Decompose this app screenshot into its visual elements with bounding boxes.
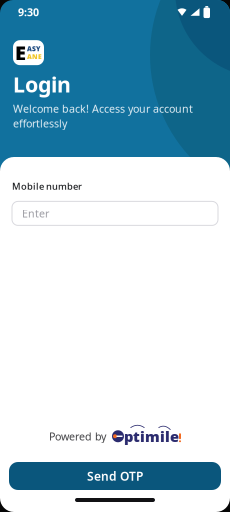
- button[interactable]: Mobile number: [12, 201, 218, 225]
- staticText: ptimile: [124, 426, 179, 446]
- staticText: Send OTP: [87, 468, 143, 484]
- staticText: Enter: [22, 206, 49, 220]
- staticText: Mobile number: [12, 180, 82, 192]
- button[interactable]: Send OTP: [9, 462, 221, 490]
- staticText: ASY: [27, 44, 40, 53]
- staticText: Welcome back! Access your account effort…: [13, 101, 193, 130]
- staticText: Login: [13, 70, 71, 98]
- staticText: Powered by: [49, 429, 106, 443]
- staticText: E: [15, 39, 26, 66]
- staticText: 9:30: [18, 5, 39, 19]
- staticText: ANE: [27, 52, 42, 61]
